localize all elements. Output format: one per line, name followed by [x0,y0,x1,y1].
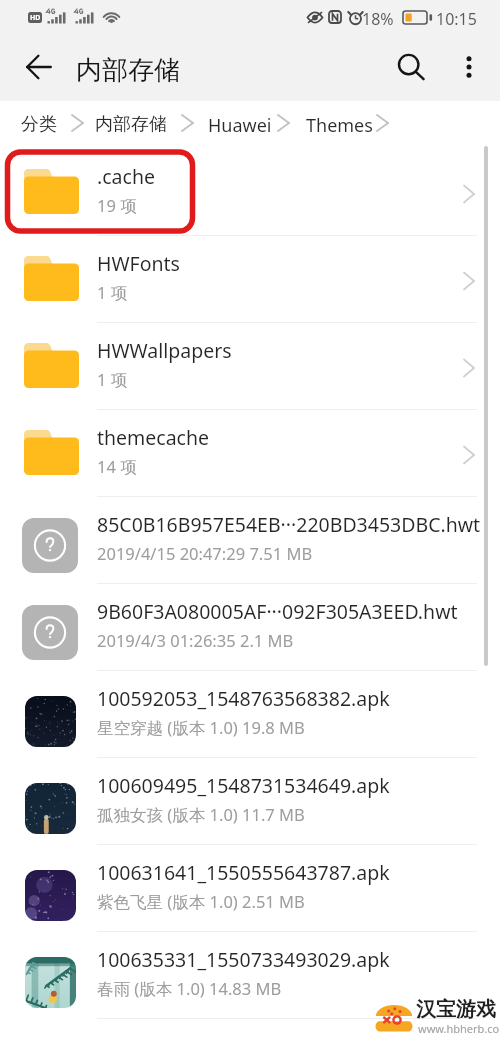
button[interactable]: 9B60F3A080005AF···092F305A3EED.hwt [0,584,500,671]
staticText: 9B60F3A080005AF···092F305A3EED.hwt [97,598,458,625]
staticText: www.hbherb.com [418,1021,500,1036]
button[interactable]: 85C0B16B957E54EB···220BD3453DBC.hwt [0,497,500,584]
staticText: 14 项 [97,455,137,478]
staticText: 2019/4/3 01:26:35 2.1 MB [97,629,294,651]
staticText: 孤独女孩 (版本 1.0) 11.7 MB [97,803,305,826]
button[interactable]: 100609495_1548731534649.apk [0,758,500,845]
staticText: 1 项 [97,368,128,391]
staticText: 10:15 [436,8,477,30]
staticText: 100631641_1550555643787.apk [97,859,390,886]
button[interactable]: .cache [0,149,500,236]
button[interactable]: 100631641_1550555643787.apk [0,845,500,932]
staticText: 85C0B16B957E54EB···220BD3453DBC.hwt [97,511,481,538]
staticText: 紫色飞星 (版本 1.0) 2.51 MB [97,890,305,913]
staticText: 1 项 [97,281,128,304]
staticText: 100592053_1548763568382.apk [97,685,390,712]
staticText: 分类 [21,113,57,136]
staticText: 汉宝游戏 [416,997,496,1022]
button[interactable]: 100635331_1550733493029.apk [0,932,500,1019]
staticText: Themes [306,113,373,138]
staticText: 100609495_1548731534649.apk [97,772,390,799]
staticText: Huawei [208,113,272,138]
button[interactable]: HWWallpapers [0,323,500,410]
staticText: HWWallpapers [97,337,232,364]
staticText: 100635331_1550733493029.apk [97,946,390,973]
staticText: 春雨 (版本 1.0) 14.83 MB [97,977,282,1000]
button[interactable]: Search [387,43,437,93]
button[interactable]: Back [13,41,65,93]
button[interactable]: 内部存储 [89,108,173,141]
button[interactable]: More options [444,42,494,92]
staticText: 内部存储 [76,54,180,87]
button[interactable]: Huawei [202,108,278,143]
button[interactable]: themecache [0,410,500,497]
button[interactable]: Themes [300,108,379,143]
staticText: 18% [362,8,394,30]
staticText: .cache [97,163,155,190]
staticText: HD [30,13,41,23]
staticText: 星空穿越 (版本 1.0) 19.8 MB [97,716,305,739]
staticText: HWFonts [97,250,180,277]
button[interactable]: 分类 [15,108,63,141]
button[interactable]: 100592053_1548763568382.apk [0,671,500,758]
staticText: 19 项 [97,194,137,217]
staticText: themecache [97,424,210,451]
button[interactable]: HWFonts [0,236,500,323]
staticText: 2019/4/15 20:47:29 7.51 MB [97,542,313,564]
staticText: 内部存储 [95,113,167,136]
